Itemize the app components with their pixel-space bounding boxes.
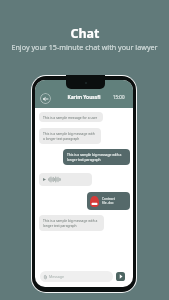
button[interactable]: This is a sample big message with a long… <box>63 149 130 165</box>
button[interactable]: This is a sample big message with a long… <box>39 215 104 231</box>
staticText: This is a sample big message with a long… <box>43 131 97 141</box>
button[interactable]: Play voice message <box>39 173 92 186</box>
staticText: Contract file .doc <box>102 197 127 205</box>
staticText: Chat <box>70 25 100 42</box>
staticText: Karim Youssfi <box>67 94 101 101</box>
staticText: Message <box>49 274 64 279</box>
staticText: This is a sample big message with a long… <box>67 152 126 162</box>
button[interactable]: Back <box>40 93 51 104</box>
staticText: Enjoy your 15-minute chat with your lawy… <box>11 42 158 52</box>
staticText: 15:00 <box>113 94 125 100</box>
button[interactable]: Send <box>116 272 125 281</box>
button[interactable]: This is a sample message for a user <box>39 112 103 122</box>
button[interactable]: Contract file .doc <box>87 192 130 210</box>
button[interactable]: This is a sample big message with a long… <box>39 128 101 144</box>
button[interactable]: Message <box>40 271 113 282</box>
staticText: This is a sample message for a user <box>43 115 98 119</box>
staticText: This is a sample big message with a long… <box>43 218 100 228</box>
